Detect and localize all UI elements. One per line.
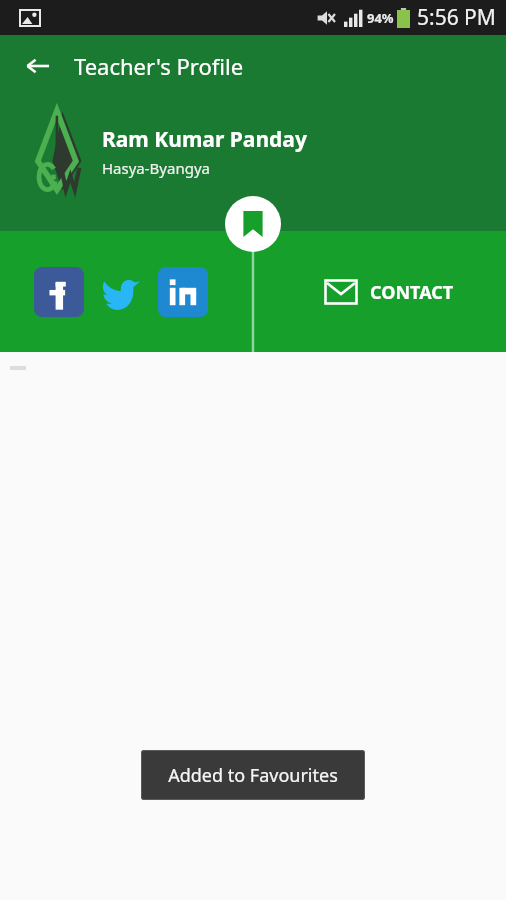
staticText: Added to Favourites: [168, 763, 338, 788]
staticText: 5:56 PM: [417, 3, 496, 32]
staticText: 94%: [367, 9, 394, 27]
button[interactable]: Facebook: [34, 267, 84, 317]
staticText: Hasya-Byangya: [102, 158, 210, 178]
staticText: Teacher's Profile: [74, 51, 244, 81]
button[interactable]: Add to favourites: [225, 196, 281, 252]
button[interactable]: Back: [16, 44, 60, 88]
button[interactable]: LinkedIn: [158, 267, 208, 317]
button[interactable]: Twitter: [96, 267, 146, 317]
staticText: Ram Kumar Panday: [102, 125, 307, 154]
staticText: CONTACT: [370, 280, 454, 305]
button[interactable]: CONTACT: [320, 271, 458, 313]
